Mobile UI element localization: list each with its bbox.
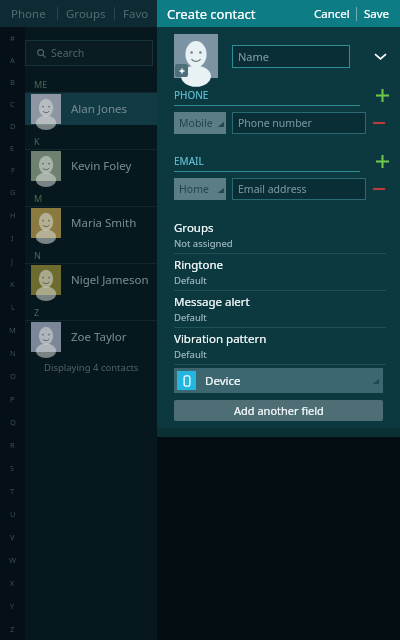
staticText: T: [10, 486, 15, 496]
staticText: Email address: [238, 182, 307, 196]
staticText: W: [9, 555, 16, 565]
staticText: I: [11, 233, 14, 243]
button[interactable]: Alan Jones: [25, 92, 157, 125]
staticText: C: [10, 99, 15, 109]
staticText: N: [34, 249, 41, 261]
staticText: B: [10, 77, 15, 87]
staticText: Default: [174, 348, 207, 361]
staticText: K: [34, 135, 40, 147]
button[interactable]: Ringtone: [157, 254, 400, 291]
staticText: Kevin Foley: [71, 158, 132, 174]
staticText: Create contact: [167, 5, 256, 23]
staticText: Message alert: [174, 294, 250, 310]
button[interactable]: Cancel: [308, 0, 356, 27]
staticText: R: [10, 440, 15, 450]
staticText: Home: [179, 182, 209, 196]
button[interactable]: Phone: [0, 0, 57, 27]
staticText: V: [10, 532, 15, 542]
button[interactable]: Expand name fields: [366, 42, 394, 70]
staticText: Ringtone: [174, 257, 224, 273]
staticText: O: [10, 371, 16, 381]
button[interactable]: Device: [174, 368, 383, 393]
staticText: Cancel: [314, 6, 350, 22]
button[interactable]: Add another field: [174, 400, 383, 421]
button[interactable]: Kevin Foley: [25, 149, 157, 182]
staticText: S: [10, 463, 15, 473]
button[interactable]: Message alert: [157, 291, 400, 328]
staticText: PHONE: [174, 88, 209, 102]
staticText: U: [10, 509, 16, 519]
button[interactable]: Mobile: [174, 112, 226, 134]
staticText: Zoe Taylor: [71, 329, 127, 345]
staticText: K: [10, 279, 15, 289]
staticText: Y: [10, 601, 15, 611]
staticText: F: [11, 165, 15, 175]
button[interactable]: Remove Home field: [366, 176, 392, 202]
staticText: Nigel Jameson: [71, 272, 149, 288]
button[interactable]: Nigel Jameson: [25, 263, 157, 296]
staticText: Alan Jones: [71, 101, 128, 117]
staticText: Mobile: [179, 116, 213, 130]
staticText: A: [10, 55, 15, 65]
staticText: Vibration pattern: [174, 331, 267, 347]
button[interactable]: Favo: [115, 0, 157, 27]
button[interactable]: Zoe Taylor: [25, 320, 157, 353]
staticText: #: [10, 33, 15, 43]
button[interactable]: Vibration pattern: [157, 328, 400, 365]
button[interactable]: Phone number: [232, 112, 366, 134]
staticText: Favo: [123, 6, 149, 22]
button[interactable]: Email address: [232, 178, 366, 200]
staticText: Phone: [11, 6, 46, 22]
staticText: M: [9, 325, 16, 335]
button[interactable]: Name: [232, 45, 350, 68]
staticText: P: [10, 394, 15, 404]
button[interactable]: Remove Mobile field: [366, 110, 392, 136]
button[interactable]: Groups: [157, 217, 400, 254]
staticText: G: [10, 187, 16, 197]
staticText: Default: [174, 311, 207, 324]
button[interactable]: Search: [25, 40, 153, 66]
staticText: Search: [51, 46, 85, 60]
staticText: Groups: [174, 220, 214, 236]
staticText: Not assigned: [174, 237, 233, 250]
staticText: Displaying 4 contacts: [44, 361, 139, 374]
staticText: L: [11, 302, 15, 312]
button[interactable]: Home: [174, 178, 226, 200]
staticText: Add another field: [234, 403, 324, 418]
staticText: E: [10, 143, 15, 153]
staticText: D: [10, 121, 16, 131]
button[interactable]: Add contact photo: [174, 34, 218, 78]
button[interactable]: Groups: [58, 0, 114, 27]
staticText: N: [10, 348, 16, 358]
staticText: H: [10, 210, 16, 220]
button[interactable]: Save: [357, 0, 397, 27]
staticText: J: [11, 256, 14, 266]
staticText: X: [10, 578, 15, 588]
staticText: Phone number: [238, 116, 312, 130]
staticText: ME: [34, 78, 48, 90]
staticText: Z: [10, 624, 15, 634]
staticText: Z: [34, 306, 40, 318]
button[interactable]: Add EMAIL: [372, 151, 392, 171]
staticText: Save: [364, 6, 390, 22]
staticText: Groups: [66, 6, 106, 22]
button[interactable]: Maria Smith: [25, 206, 157, 239]
button[interactable]: Add PHONE: [372, 85, 392, 105]
staticText: EMAIL: [174, 154, 204, 168]
staticText: M: [34, 192, 43, 204]
staticText: Default: [174, 274, 207, 287]
staticText: Maria Smith: [71, 215, 137, 231]
staticText: Name: [238, 49, 270, 64]
staticText: Q: [10, 417, 16, 427]
staticText: Device: [205, 373, 241, 389]
